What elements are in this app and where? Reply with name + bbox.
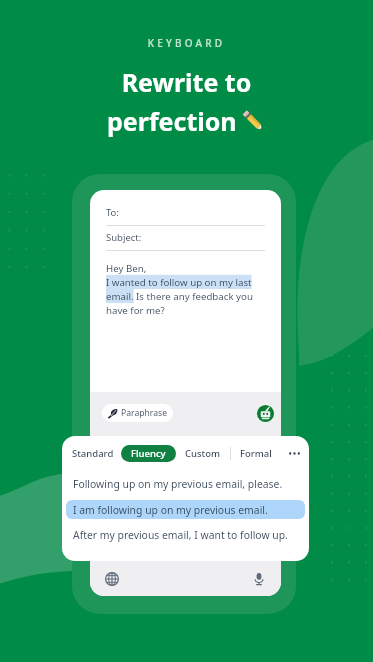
button[interactable]: Formal <box>240 447 272 460</box>
staticText: Fluency <box>131 447 166 460</box>
button[interactable]: Paraphrase <box>102 404 173 422</box>
staticText: Hey Ben, I wanted to follow up on my las… <box>106 262 253 317</box>
button[interactable]: More options <box>283 442 305 464</box>
staticText: KEYBOARD <box>0 36 373 50</box>
staticText: I am following up on my previous email. <box>73 503 268 517</box>
button[interactable]: I am following up on my previous email. <box>66 500 305 519</box>
button[interactable]: Change language <box>101 568 123 590</box>
button[interactable]: Following up on my previous email, pleas… <box>62 470 309 498</box>
staticText: Following up on my previous email, pleas… <box>73 477 283 491</box>
staticText: After my previous email, I want to follo… <box>73 528 288 542</box>
button[interactable]: Grammarly assistant <box>256 404 275 423</box>
staticText: To: <box>106 206 119 219</box>
button[interactable]: Custom <box>185 447 221 460</box>
button[interactable]: Standard <box>72 447 114 460</box>
button[interactable]: After my previous email, I want to follo… <box>62 521 309 549</box>
staticText: Subject: <box>106 231 142 244</box>
button[interactable]: Voice input <box>248 568 270 590</box>
staticText: Rewrite to <box>0 65 373 99</box>
staticText: perfection <box>107 104 237 138</box>
staticText: Paraphrase <box>121 407 167 419</box>
button[interactable]: Fluency <box>121 445 176 462</box>
